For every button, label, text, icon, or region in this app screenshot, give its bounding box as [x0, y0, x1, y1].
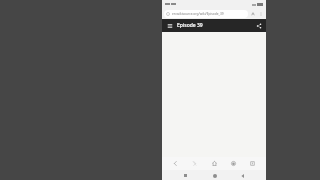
button[interactable]: Home: [209, 158, 220, 169]
button[interactable]: Home: [210, 171, 219, 180]
button[interactable]: Bookmark: [250, 11, 256, 17]
other: Site info: [166, 12, 170, 16]
button[interactable]: More options: [258, 11, 264, 17]
button[interactable]: Menu: [165, 21, 174, 30]
staticText: en.wikisource.org/wiki/Episode_39: [172, 12, 224, 16]
button[interactable]: Recents: [181, 171, 190, 180]
button[interactable]: Back: [170, 158, 181, 169]
button[interactable]: Tabs: [247, 158, 258, 169]
button[interactable]: Share: [254, 21, 263, 30]
button[interactable]: Site info: [164, 10, 248, 18]
button[interactable]: Refresh: [228, 158, 239, 169]
button[interactable]: Back: [238, 171, 247, 180]
staticText: Episode 39: [177, 22, 203, 29]
button[interactable]: Forward: [189, 158, 200, 169]
